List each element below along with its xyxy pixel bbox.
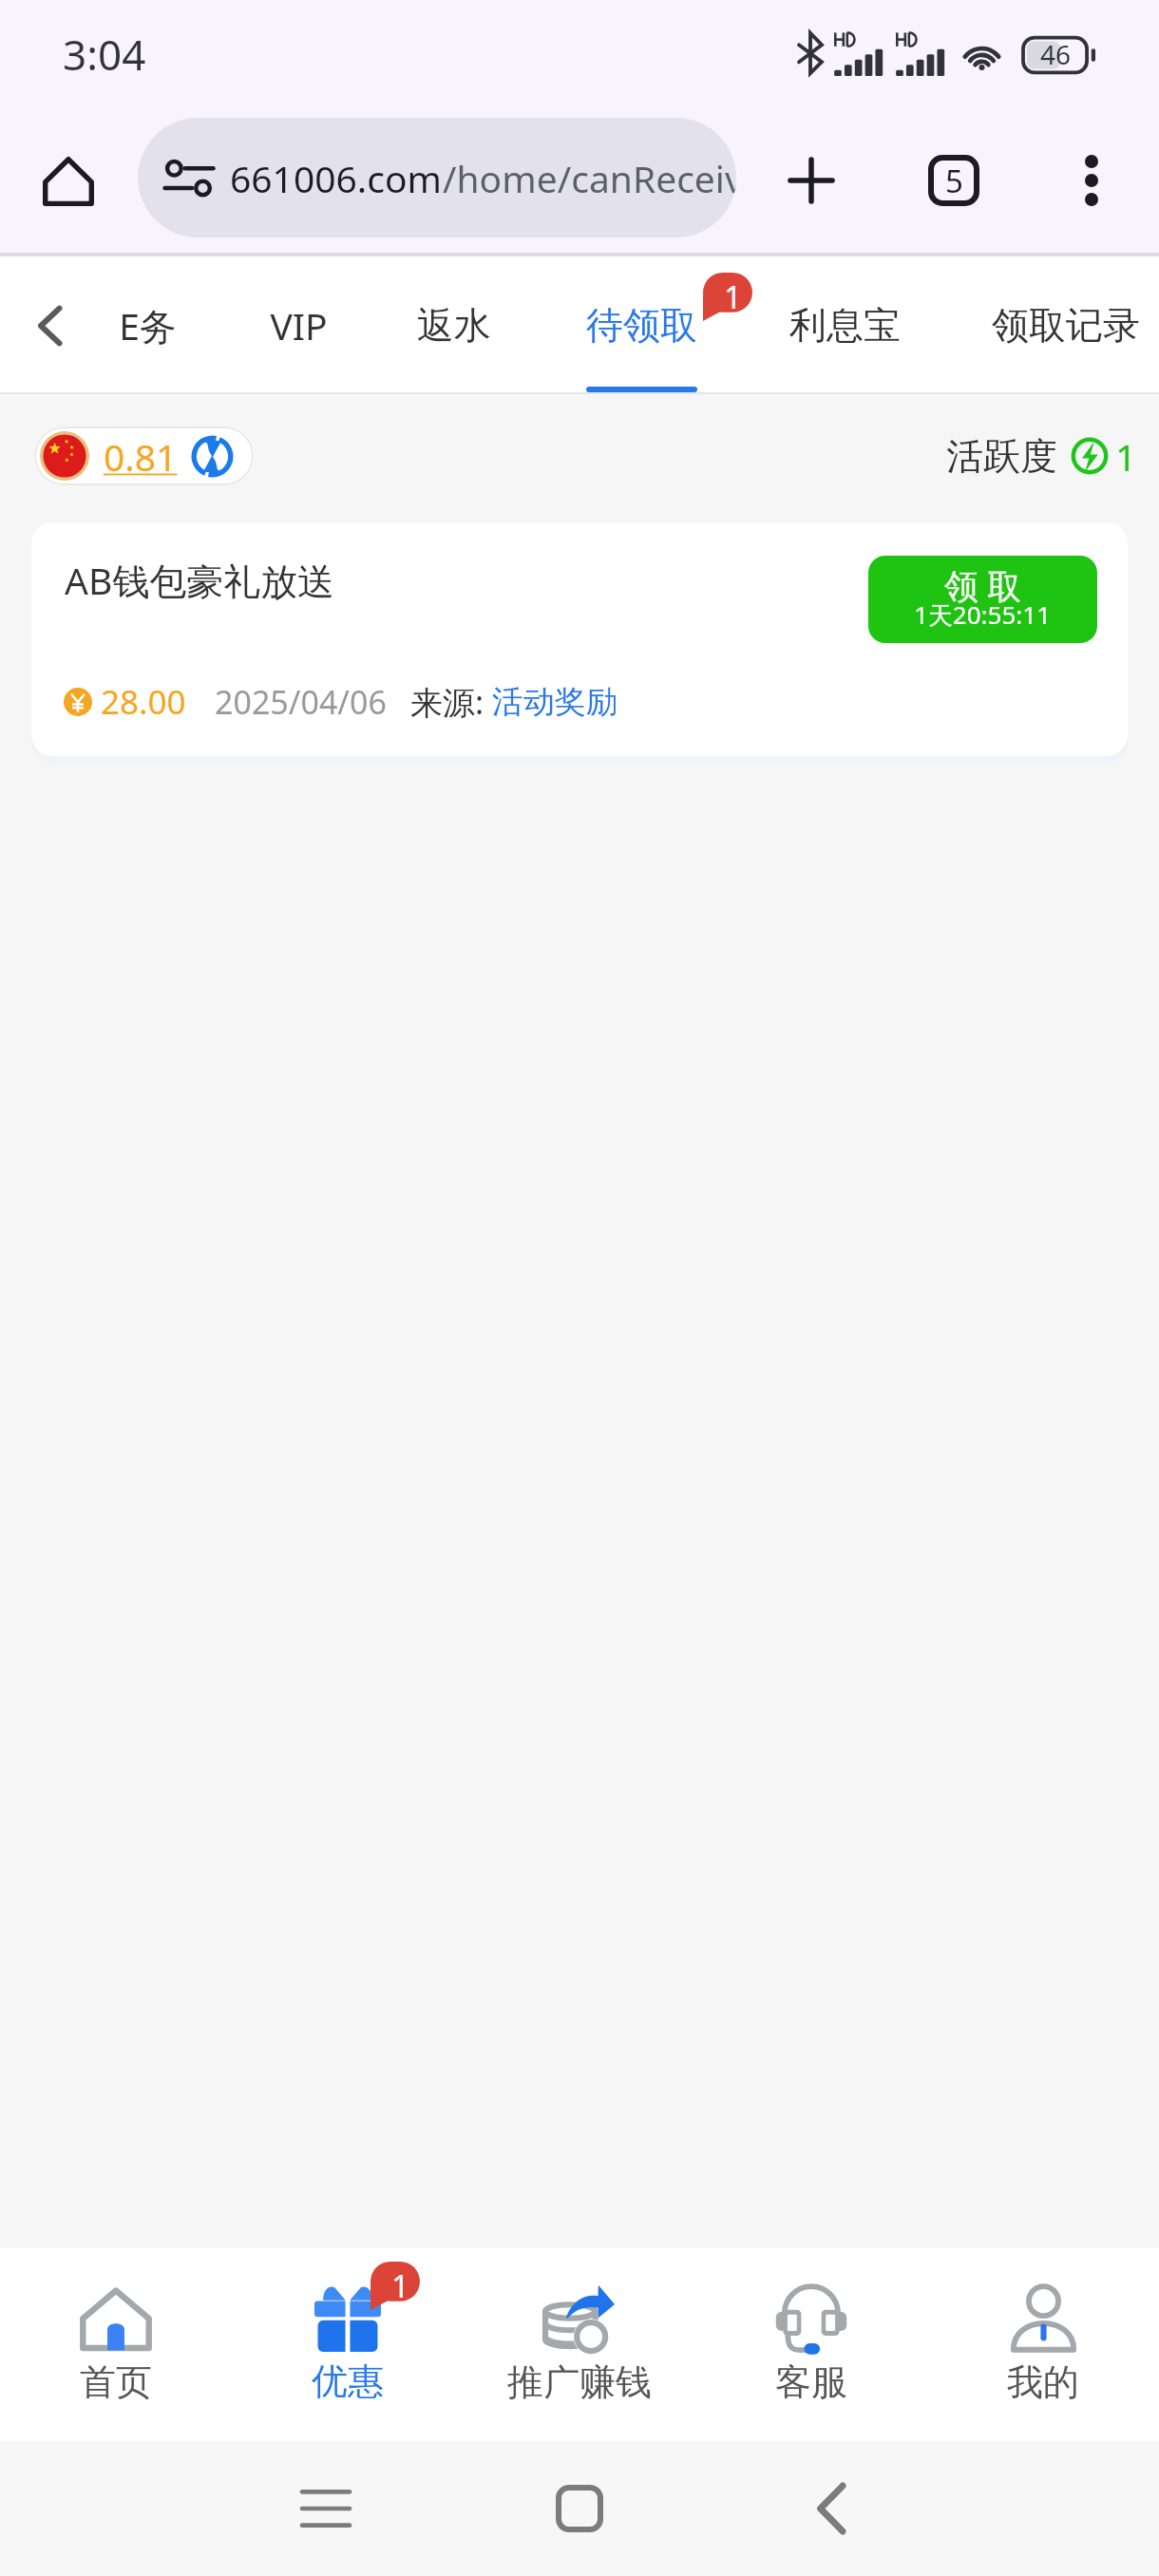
button[interactable]: 我的: [927, 2248, 1159, 2441]
staticText: /home/canReceiv: [443, 153, 736, 203]
staticText: 利息宝: [789, 302, 901, 349]
staticText: 领取记录: [992, 302, 1140, 349]
staticText: 返水: [417, 302, 491, 349]
staticText: 1: [1115, 431, 1137, 482]
button[interactable]: 661006.com: [138, 118, 736, 237]
staticText: 2025/04/06: [215, 680, 387, 724]
staticText: 5: [945, 160, 963, 202]
button[interactable]: Back: [17, 294, 82, 358]
staticText: AB钱包豪礼放送: [65, 555, 335, 605]
staticText: 客服: [775, 2359, 847, 2405]
button[interactable]: Home page: [28, 141, 108, 220]
button[interactable]: New tab: [770, 140, 851, 220]
button[interactable]: Back: [774, 2441, 888, 2576]
staticText: 1天20:55:11: [914, 597, 1052, 632]
staticText: 0.81: [104, 431, 178, 482]
button[interactable]: More options: [1051, 140, 1131, 220]
button[interactable]: 领取记录: [967, 256, 1159, 394]
staticText: 活跃度: [946, 433, 1057, 480]
button[interactable]: 利息宝: [766, 256, 923, 394]
staticText: 3:04: [63, 26, 146, 83]
button[interactable]: 0.81: [34, 426, 254, 485]
staticText: 待领取: [586, 302, 697, 349]
staticText: 1: [724, 275, 742, 318]
button[interactable]: Recent apps: [269, 2441, 383, 2576]
staticText: 优惠: [312, 2358, 384, 2404]
staticText: E务: [119, 300, 177, 350]
staticText: VIP: [270, 300, 328, 350]
button[interactable]: E务: [88, 256, 206, 394]
staticText: 推广赚钱: [507, 2359, 652, 2405]
staticText: 661006.com: [230, 153, 443, 203]
staticText: 来源:: [410, 680, 484, 724]
button[interactable]: 1: [232, 2248, 464, 2441]
staticText: 1: [391, 2264, 409, 2307]
button[interactable]: 客服: [695, 2248, 927, 2441]
staticText: 首页: [80, 2359, 152, 2405]
button[interactable]: VIP: [219, 256, 377, 394]
button[interactable]: 待领取: [562, 256, 720, 394]
button[interactable]: Switch tabs, 5 open: [913, 140, 994, 220]
button[interactable]: 领 取: [868, 556, 1097, 643]
button[interactable]: 活跃度: [946, 426, 1137, 485]
staticText: 46: [1040, 36, 1072, 72]
staticText: 活动奖励: [492, 682, 617, 722]
button[interactable]: 返水: [395, 256, 513, 394]
staticText: 我的: [1007, 2359, 1079, 2405]
button[interactable]: Home: [522, 2441, 636, 2576]
button[interactable]: 推广赚钱: [464, 2248, 695, 2441]
button[interactable]: AB钱包豪礼放送: [31, 522, 1128, 756]
button[interactable]: 首页: [0, 2248, 232, 2441]
staticText: 领 取: [944, 562, 1022, 609]
staticText: 28.00: [101, 679, 186, 725]
